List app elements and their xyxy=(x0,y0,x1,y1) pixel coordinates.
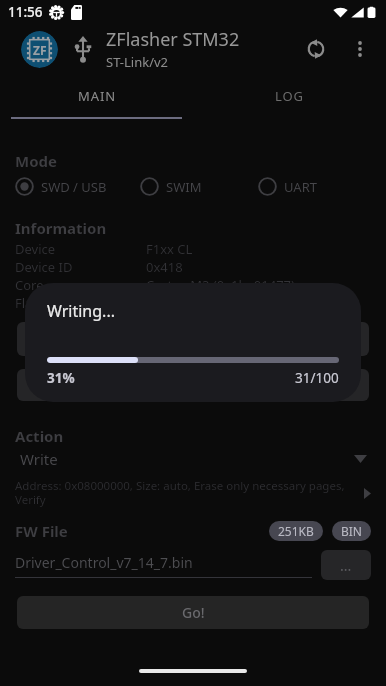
button[interactable]: MAIN xyxy=(0,74,193,117)
button[interactable]: BIN xyxy=(341,521,362,541)
staticText: Core xyxy=(15,276,44,294)
staticText: Mode xyxy=(15,151,57,171)
staticText: 31/100 xyxy=(295,369,339,387)
staticText: F1xx CL xyxy=(146,240,193,258)
staticText: Address: 0x08000000, Size: auto, Erase o… xyxy=(15,478,348,508)
staticText: Cortex-M3 (0x1ba01477) xyxy=(146,276,295,294)
staticText: SWIM xyxy=(166,178,202,196)
staticText: Writing... xyxy=(47,300,115,322)
staticText: 31% xyxy=(47,369,75,387)
staticText: 0x418 xyxy=(146,258,183,276)
button[interactable]: Address: 0x08000000, Size: auto, Erase o… xyxy=(15,478,371,508)
staticText: UART xyxy=(284,178,317,196)
button[interactable]: Browse files xyxy=(321,550,371,580)
button[interactable]: 251KB xyxy=(278,521,314,541)
button[interactable]: UART xyxy=(258,177,317,196)
staticText: MAIN xyxy=(78,87,116,105)
staticText: 251KB xyxy=(278,523,314,539)
staticText: Write xyxy=(20,449,58,469)
button[interactable]: SWIM xyxy=(140,177,258,196)
staticText: SWD / USB xyxy=(41,178,107,196)
staticText: BIN xyxy=(341,523,362,539)
button[interactable]: ZFlasher app icon xyxy=(21,31,58,68)
staticText: Go! xyxy=(182,603,205,622)
staticText: Action xyxy=(15,426,64,446)
staticText: Driver_Control_v7_14_7.bin xyxy=(15,553,193,572)
staticText: LOG xyxy=(275,87,304,105)
staticText: ST-Link/v2 xyxy=(106,53,169,71)
staticText: Device ID xyxy=(15,258,73,276)
staticText: Information xyxy=(15,218,107,238)
button[interactable]: Refresh xyxy=(294,27,338,71)
button[interactable]: More options xyxy=(338,27,382,71)
staticText: ... xyxy=(340,556,352,575)
staticText: Device xyxy=(15,240,56,258)
button[interactable]: LOG xyxy=(193,74,386,117)
staticText: FW File xyxy=(15,521,68,541)
staticText: Flash xyxy=(15,294,47,312)
button[interactable]: Disconnect xyxy=(17,369,369,401)
button[interactable]: SWD / USB xyxy=(15,177,140,196)
staticText: ZF xyxy=(33,42,47,58)
button[interactable]: Write xyxy=(15,448,371,470)
staticText: 11:56 xyxy=(8,3,43,21)
button[interactable]: Go! xyxy=(17,596,369,629)
staticText: ZFlasher STM32 xyxy=(106,27,240,52)
